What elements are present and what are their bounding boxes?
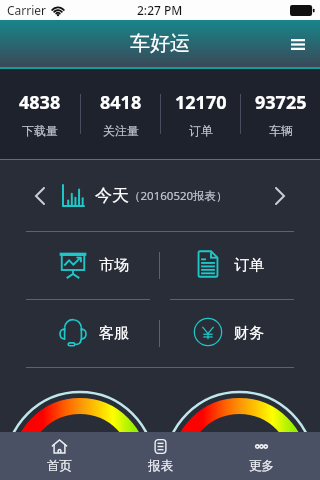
staticText: 订单 bbox=[234, 256, 264, 275]
button[interactable]: 客服 bbox=[0, 300, 159, 367]
staticText: 2:27 PM bbox=[137, 2, 183, 18]
staticText: 车辆 bbox=[269, 123, 293, 138]
staticText: 订单 bbox=[189, 123, 213, 138]
staticText: 财务 bbox=[234, 324, 264, 343]
staticText: 4838 bbox=[19, 90, 61, 115]
staticText: 12170 bbox=[175, 90, 227, 115]
button[interactable]: 市场 bbox=[0, 232, 159, 299]
button[interactable]: Menu bbox=[276, 22, 320, 66]
button[interactable]: 订单 bbox=[160, 232, 320, 299]
staticText: 93725 bbox=[255, 90, 307, 115]
button[interactable]: 财务 bbox=[160, 300, 320, 367]
button[interactable]: Next day bbox=[264, 180, 296, 212]
staticText: 下载量 bbox=[22, 123, 58, 138]
button[interactable]: 报表 bbox=[110, 432, 211, 480]
staticText: 关注量 bbox=[103, 123, 139, 138]
staticText: 市场 bbox=[99, 256, 129, 275]
button[interactable]: Previous day bbox=[24, 180, 56, 212]
button[interactable]: 4838 bbox=[0, 69, 80, 159]
staticText: 今天 bbox=[95, 185, 129, 206]
button[interactable]: 93725 bbox=[241, 69, 320, 159]
button[interactable]: 首页 bbox=[8, 432, 110, 480]
button[interactable]: 12170 bbox=[161, 69, 240, 159]
staticText: 客服 bbox=[99, 324, 129, 343]
staticText: 车好运 bbox=[130, 31, 190, 56]
staticText: 首页 bbox=[47, 458, 72, 474]
staticText: （20160520报表） bbox=[129, 188, 228, 204]
staticText: 更多 bbox=[249, 458, 274, 474]
staticText: Carrier bbox=[7, 2, 47, 18]
button[interactable]: 8418 bbox=[81, 69, 160, 159]
staticText: 报表 bbox=[148, 458, 173, 474]
staticText: 8418 bbox=[100, 90, 142, 115]
button[interactable]: 更多 bbox=[211, 432, 312, 480]
